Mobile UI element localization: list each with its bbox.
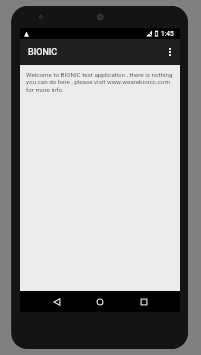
button[interactable]: Back	[50, 295, 64, 309]
staticText: 1:45	[161, 30, 174, 38]
button[interactable]: Home	[93, 295, 107, 309]
staticText: Welcome to BIONIC test application , the…	[26, 71, 176, 94]
staticText: BIONIC	[28, 47, 58, 58]
button[interactable]: More options	[160, 39, 180, 65]
button[interactable]: Recent apps	[137, 295, 151, 309]
